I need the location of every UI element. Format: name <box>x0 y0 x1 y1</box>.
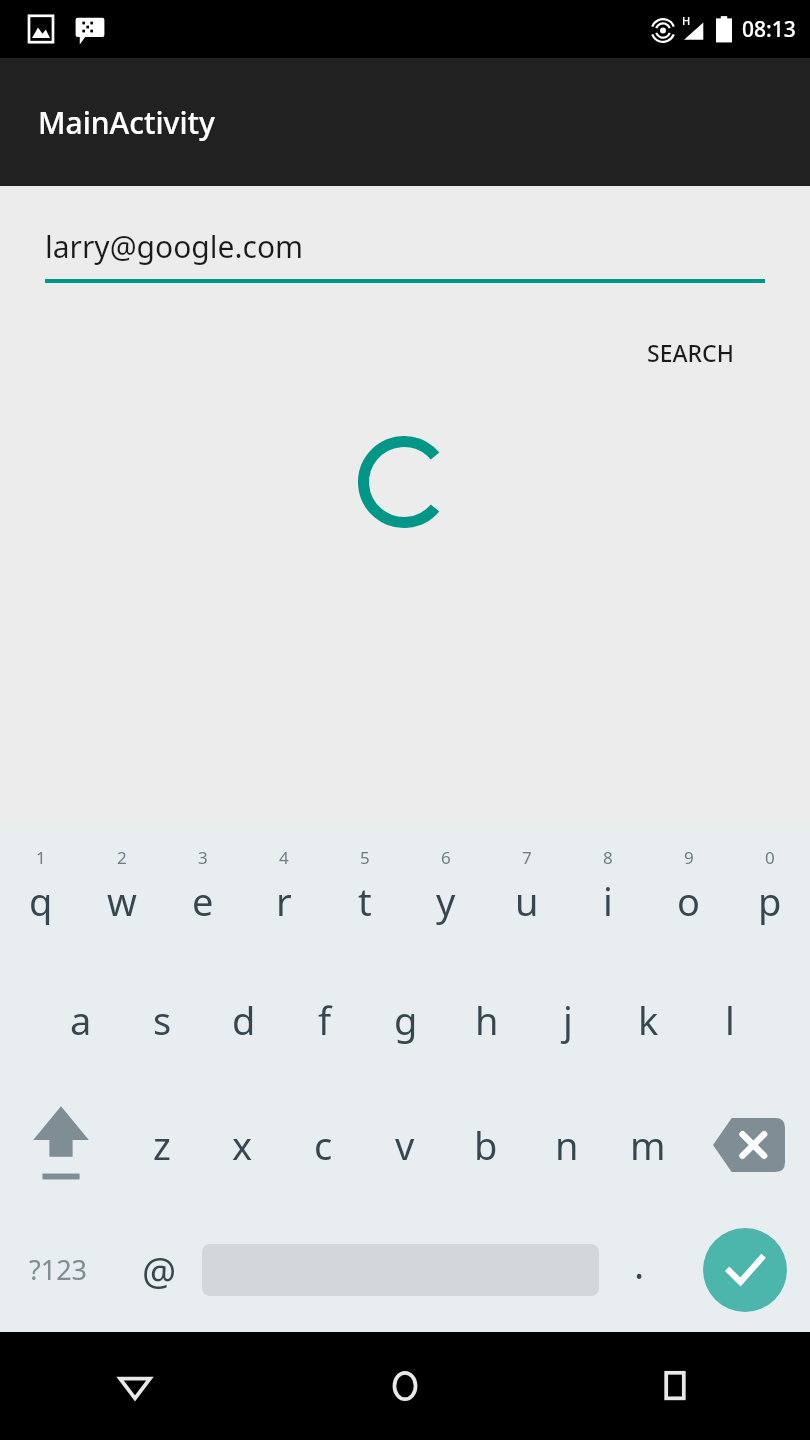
button[interactable]: 5 <box>324 829 405 957</box>
staticText: 9 <box>684 846 694 869</box>
staticText: 08:13 <box>742 15 796 44</box>
staticText: q <box>29 875 53 927</box>
button[interactable]: SEARCH <box>631 327 750 378</box>
staticText: 3 <box>198 846 208 869</box>
staticText: h <box>475 994 499 1046</box>
staticText: 1 <box>36 846 46 869</box>
staticText: . <box>634 1238 645 1290</box>
staticText: e <box>192 875 214 927</box>
button[interactable]: l <box>689 957 770 1082</box>
button[interactable]: f <box>284 957 365 1082</box>
staticText: b <box>474 1119 498 1171</box>
button[interactable]: 8 <box>567 829 648 957</box>
button[interactable]: m <box>607 1082 688 1207</box>
staticText: l <box>725 994 735 1046</box>
button[interactable]: d <box>203 957 284 1082</box>
button[interactable]: @ <box>117 1207 202 1332</box>
button[interactable]: larry@google.com <box>45 226 765 267</box>
button[interactable]: Home <box>270 1332 540 1440</box>
button[interactable]: Enter <box>680 1207 810 1332</box>
button[interactable]: Space <box>202 1207 599 1332</box>
staticText: j <box>563 994 573 1046</box>
button[interactable]: 0 <box>729 829 810 957</box>
button[interactable]: x <box>202 1082 283 1207</box>
staticText: n <box>555 1119 579 1171</box>
button[interactable]: g <box>365 957 446 1082</box>
staticText: s <box>153 994 172 1046</box>
staticText: v <box>395 1119 415 1171</box>
staticText: m <box>630 1119 666 1171</box>
staticText: 0 <box>765 846 775 869</box>
staticText: MainActivity <box>38 102 215 143</box>
button[interactable]: v <box>364 1082 445 1207</box>
staticText: ?123 <box>29 1251 88 1288</box>
button[interactable]: Shift <box>0 1082 121 1207</box>
button[interactable]: 9 <box>648 829 729 957</box>
staticText: o <box>677 875 700 927</box>
staticText: y <box>436 875 456 927</box>
staticText: @ <box>142 1244 177 1296</box>
staticText: 4 <box>279 846 289 869</box>
button[interactable]: ?123 <box>0 1207 117 1332</box>
button[interactable]: z <box>121 1082 202 1207</box>
staticText: k <box>638 994 659 1046</box>
button[interactable]: 2 <box>81 829 162 957</box>
staticText: 7 <box>522 846 532 869</box>
button[interactable]: 6 <box>405 829 486 957</box>
button[interactable]: 7 <box>486 829 567 957</box>
button[interactable]: b <box>445 1082 526 1207</box>
button[interactable]: h <box>446 957 527 1082</box>
staticText: t <box>358 875 372 927</box>
staticText: u <box>515 875 539 927</box>
staticText: 5 <box>360 846 370 869</box>
staticText: i <box>603 875 613 927</box>
button[interactable]: Back <box>0 1332 270 1440</box>
button[interactable]: a <box>40 957 122 1082</box>
staticText: f <box>318 994 332 1046</box>
staticText: w <box>107 875 137 927</box>
button[interactable]: . <box>599 1207 680 1332</box>
staticText: H <box>682 13 691 28</box>
staticText: r <box>276 875 292 927</box>
staticText: p <box>758 875 782 927</box>
button[interactable]: j <box>527 957 608 1082</box>
staticText: x <box>232 1119 253 1171</box>
staticText: larry@google.com <box>45 226 304 267</box>
staticText: c <box>314 1119 333 1171</box>
staticText: d <box>232 994 256 1046</box>
staticText: z <box>153 1119 171 1171</box>
staticText: 6 <box>441 846 451 869</box>
button[interactable]: 4 <box>243 829 324 957</box>
staticText: 8 <box>603 846 613 869</box>
button[interactable]: 3 <box>162 829 243 957</box>
button[interactable]: Recents <box>540 1332 810 1440</box>
staticText: 2 <box>117 846 127 869</box>
staticText: a <box>70 994 92 1046</box>
button[interactable]: s <box>122 957 203 1082</box>
button[interactable]: k <box>608 957 689 1082</box>
button[interactable]: n <box>526 1082 607 1207</box>
staticText: g <box>394 994 418 1046</box>
staticText: SEARCH <box>647 337 734 368</box>
button[interactable]: c <box>283 1082 364 1207</box>
button[interactable]: Backspace <box>688 1082 810 1207</box>
button[interactable]: 1 <box>0 829 81 957</box>
